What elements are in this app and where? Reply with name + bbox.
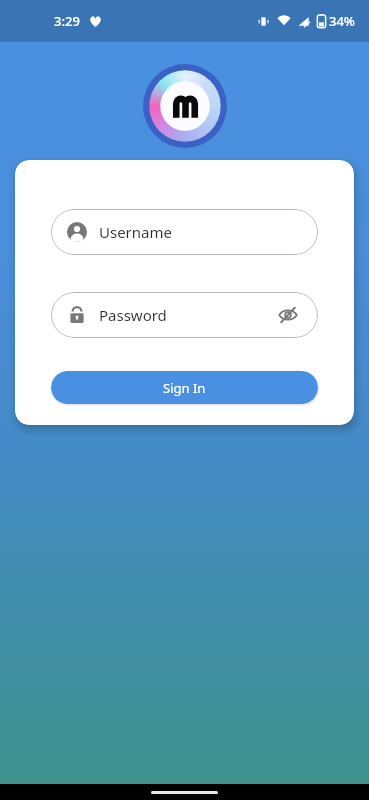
- button[interactable]: Username: [51, 209, 318, 255]
- staticText: Password: [99, 305, 167, 325]
- staticText: Username: [99, 222, 172, 242]
- staticText: 3:29: [54, 12, 80, 30]
- button[interactable]: Sign In: [51, 371, 318, 404]
- staticText: 34%: [329, 12, 355, 30]
- button[interactable]: Password: [51, 292, 318, 338]
- button[interactable]: Show password: [274, 301, 302, 329]
- staticText: Sign In: [163, 379, 206, 397]
